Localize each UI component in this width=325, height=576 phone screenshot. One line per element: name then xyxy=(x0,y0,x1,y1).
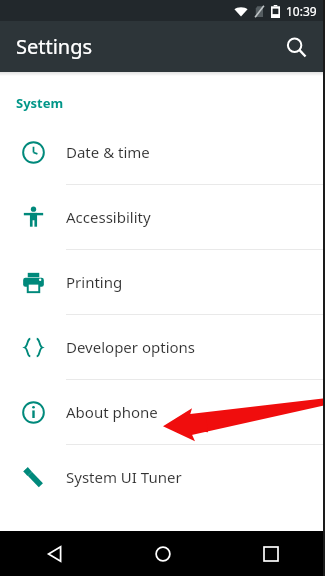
button[interactable]: Date & time xyxy=(0,120,325,184)
staticText: System xyxy=(16,94,64,112)
staticText: Date & time xyxy=(66,142,150,162)
staticText: Developer options xyxy=(66,337,196,357)
button[interactable]: System UI Tuner xyxy=(0,445,325,509)
button[interactable]: Back xyxy=(0,531,109,576)
button[interactable]: About phone xyxy=(0,380,325,444)
staticText: Settings xyxy=(16,33,93,60)
button[interactable]: Printing xyxy=(0,250,325,314)
staticText: System UI Tuner xyxy=(66,467,182,487)
button[interactable]: Accessibility xyxy=(0,185,325,249)
button[interactable]: Developer options xyxy=(0,315,325,379)
staticText: Accessibility xyxy=(66,207,151,227)
button[interactable]: Recent apps xyxy=(217,531,325,576)
button[interactable]: Search xyxy=(273,24,319,70)
staticText: About phone xyxy=(66,402,158,422)
staticText: 10:39 xyxy=(286,3,317,19)
button[interactable]: Home xyxy=(109,531,217,576)
staticText: Printing xyxy=(66,272,123,292)
